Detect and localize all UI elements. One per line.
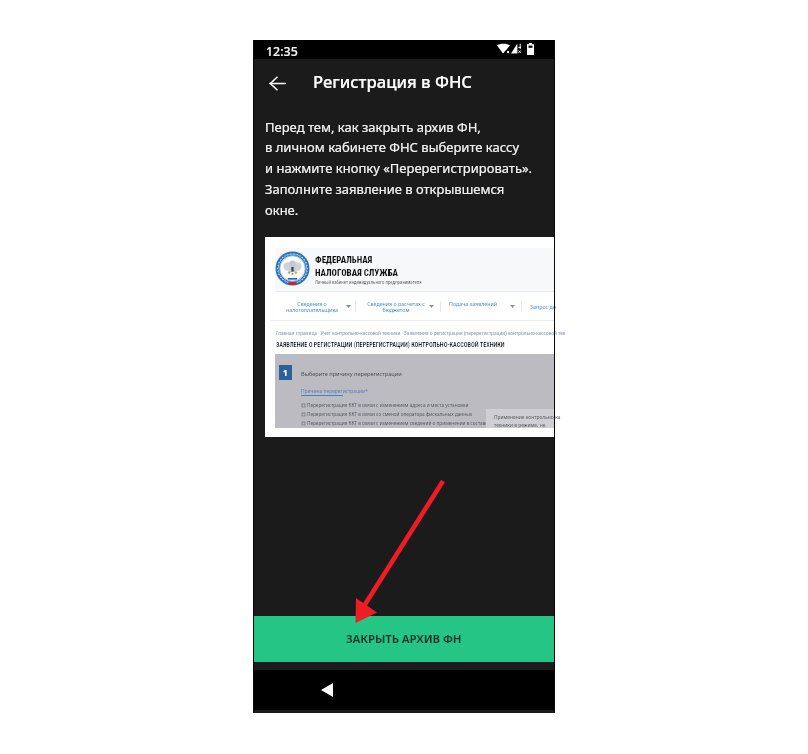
staticText: Подача заявлений <box>446 300 500 307</box>
staticText: Выберите причину перерегистрации <box>301 370 402 378</box>
staticText: Сведения о налогоплательщика <box>284 300 340 314</box>
button[interactable]: Navigate back <box>307 670 347 710</box>
staticText: Запрос до <box>530 303 556 310</box>
button[interactable]: Back <box>257 63 297 103</box>
staticText: Перерегистрация ККТ в связи со сменой оп… <box>307 411 473 417</box>
button[interactable]: ЗАКРЫТЬ АРХИВ ФН <box>253 616 555 662</box>
staticText: ФЕДЕРАЛЬНАЯ <box>315 255 373 266</box>
staticText: Регистрация в ФНС <box>313 70 473 93</box>
staticText: Причина перерегистрации* <box>301 388 368 395</box>
staticText: НАЛОГОВАЯ СЛУЖБА <box>315 268 399 279</box>
staticText: ЗАЯВЛЕНИЕ О РЕГИСТРАЦИИ (ПЕРЕРЕГИСТРАЦИИ… <box>276 341 505 348</box>
staticText: Перед тем, как закрыть архив ФН, в лично… <box>265 118 533 219</box>
staticText: Сведения о расчетах с бюджетом <box>361 300 431 314</box>
staticText: Перерегистрация ККТ в связи с изменением… <box>307 420 503 426</box>
other: Скриншот личного кабинета ФНС: заявление… <box>265 237 555 437</box>
staticText: Применение контрольно-ка техники в режим… <box>494 414 561 428</box>
staticText: Главная страница Учет контрольно-кассово… <box>276 330 566 336</box>
staticText: 12:35 <box>266 43 298 60</box>
staticText: Перерегистрация ККТ в связи с изменением… <box>307 402 469 408</box>
staticText: Личный кабинет индивидуального предприни… <box>315 280 422 286</box>
staticText: 1 <box>283 367 288 378</box>
staticText: ЗАКРЫТЬ АРХИВ ФН <box>346 631 462 647</box>
